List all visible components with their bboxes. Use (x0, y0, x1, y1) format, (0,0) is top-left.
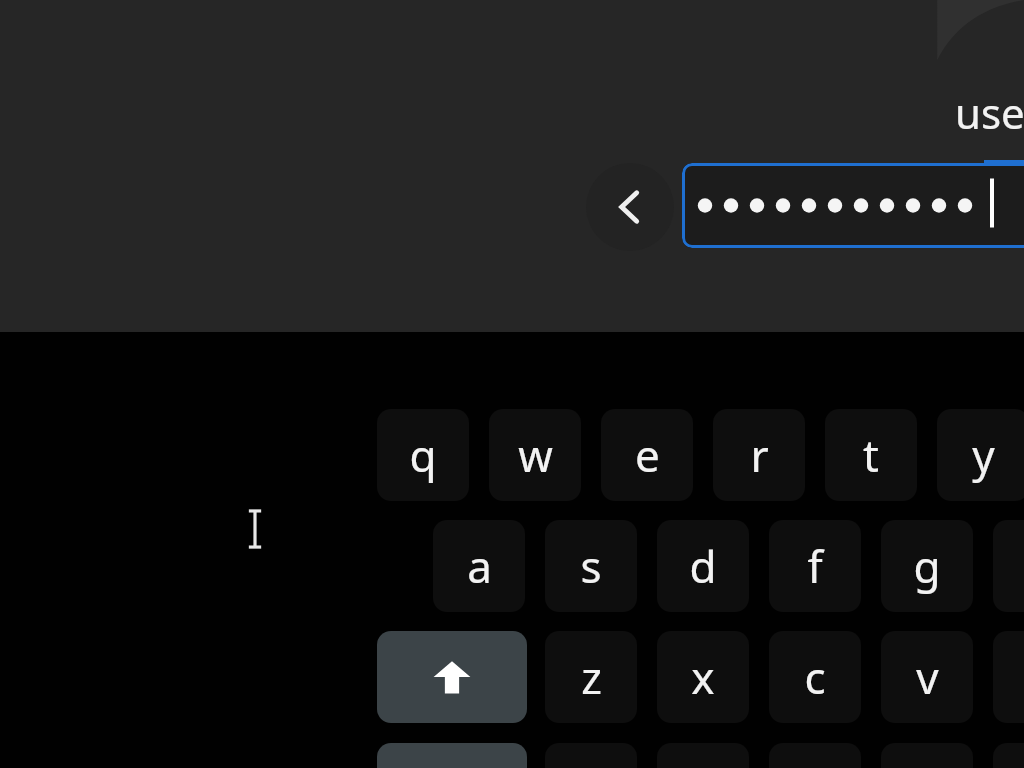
button[interactable]: w (489, 409, 581, 501)
button[interactable]: a (433, 520, 525, 612)
button[interactable]: s (545, 520, 637, 612)
staticText: f (807, 536, 823, 596)
staticText: g (913, 536, 941, 596)
button[interactable]: Shift (377, 631, 527, 723)
button[interactable]: d (657, 520, 749, 612)
button[interactable]: e (601, 409, 693, 501)
staticText: v (916, 647, 939, 707)
staticText: z (581, 647, 602, 707)
staticText: c (804, 647, 826, 707)
button[interactable]: z (545, 631, 637, 723)
staticText: r (750, 425, 769, 485)
staticText: use (955, 84, 1024, 140)
button[interactable]: v (881, 631, 973, 723)
button[interactable]: x (657, 631, 749, 723)
staticText: a (467, 536, 492, 596)
staticText: y (972, 425, 995, 485)
button[interactable] (682, 163, 1024, 248)
button[interactable]: q (377, 409, 469, 501)
button[interactable]: y (937, 409, 1024, 501)
staticText: s (580, 536, 602, 596)
button[interactable]: g (881, 520, 973, 612)
staticText: w (518, 425, 553, 485)
button[interactable]: t (825, 409, 917, 501)
staticText: e (635, 425, 660, 485)
button[interactable]: c (769, 631, 861, 723)
staticText: q (409, 425, 437, 485)
staticText: d (689, 536, 717, 596)
button[interactable]: Symbols (377, 743, 527, 768)
button[interactable]: Back (586, 163, 674, 251)
staticText: t (863, 425, 879, 485)
button[interactable]: f (769, 520, 861, 612)
staticText: x (691, 647, 715, 707)
button[interactable]: r (713, 409, 805, 501)
